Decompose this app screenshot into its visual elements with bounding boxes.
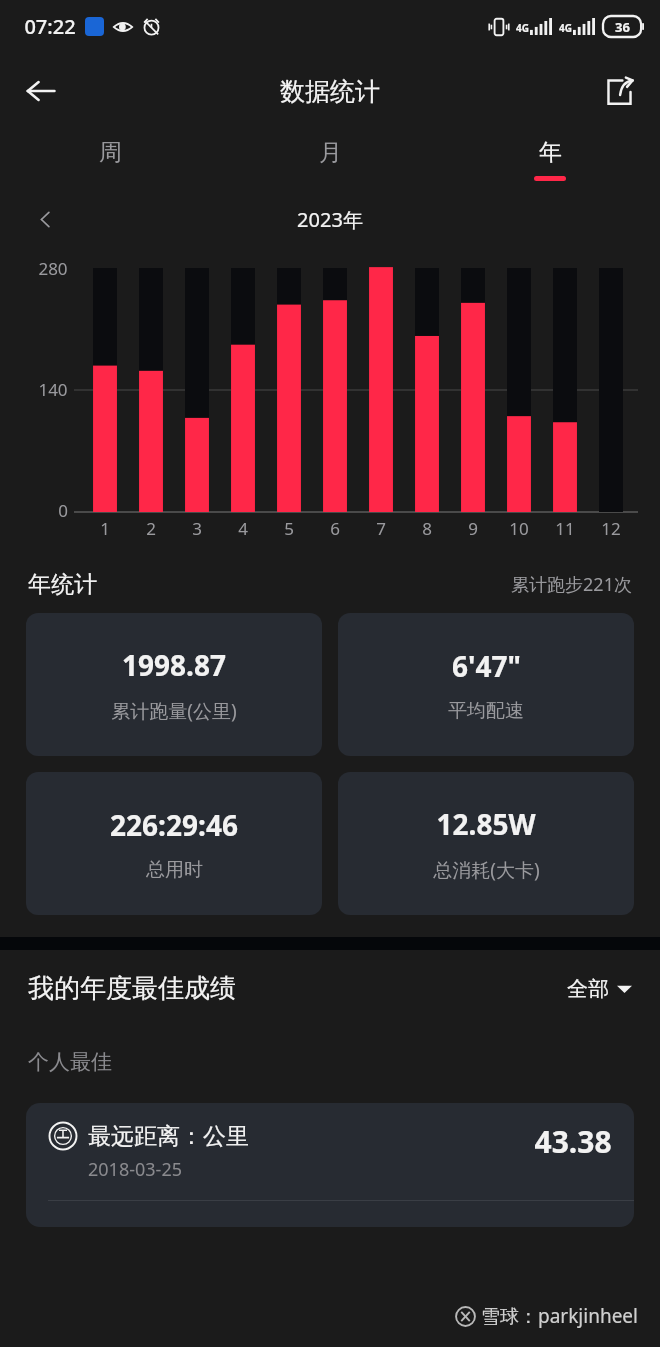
button[interactable]: 全部 [567,976,632,1002]
staticText: 12 [601,517,621,540]
staticText: 140 [38,378,68,401]
staticText: 平均配速 [448,699,524,723]
staticText: 累计跑步221次 [511,572,632,597]
staticText: 总用时 [146,858,203,882]
staticText: 全部 [567,976,609,1002]
staticText: 2023年 [297,206,363,233]
button[interactable]: 12.85W [338,772,634,915]
staticText: 11 [555,517,575,540]
button[interactable]: 月 [220,130,440,194]
staticText: 6'47" [452,647,521,685]
button[interactable]: Previous year [26,200,64,238]
button[interactable]: 6'47" [338,613,634,756]
staticText: 226:29:46 [110,806,238,844]
staticText: 12.85W [436,805,536,843]
staticText: 累计跑量(公里) [111,698,237,724]
staticText: 9 [468,517,478,540]
staticText: 数据统计 [280,76,380,107]
staticText: 4G [516,21,529,35]
staticText: 8 [422,517,432,540]
staticText: 年 [539,138,562,167]
staticText: 1998.87 [122,646,226,684]
staticText: 周 [99,138,122,167]
staticText: 6 [330,517,340,540]
staticText: 0 [58,499,68,522]
button[interactable]: 1998.87 [26,613,322,756]
button[interactable]: 最远距离：公里 [26,1103,634,1227]
button[interactable]: Share [592,64,646,118]
button[interactable]: 年 [440,130,660,194]
staticText: 年统计 [28,570,97,599]
staticText: 雪球：parkjinheel [481,1303,638,1329]
staticText: 5 [284,517,294,540]
staticText: 36 [615,18,630,36]
staticText: 1 [100,517,110,540]
button[interactable]: Back [14,64,68,118]
staticText: 43.38 [534,1121,612,1162]
staticText: 10 [509,517,529,540]
staticText: 我的年度最佳成绩 [28,972,236,1005]
staticText: 个人最佳 [28,1049,112,1075]
staticText: 4 [238,517,248,540]
staticText: 280 [38,257,68,280]
button[interactable]: 226:29:46 [26,772,322,915]
staticText: 月 [319,138,342,167]
staticText: 7 [376,517,386,540]
staticText: 07:22 [24,13,76,40]
staticText: 2 [146,517,156,540]
staticText: 3 [192,517,202,540]
staticText: 4G [559,21,572,35]
staticText: 2018-03-25 [88,1157,182,1182]
staticText: 最远距离：公里 [88,1122,249,1151]
button[interactable]: 周 [0,130,220,194]
staticText: 总消耗(大卡) [433,857,540,883]
